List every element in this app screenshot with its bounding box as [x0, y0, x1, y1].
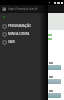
button[interactable] [0, 90, 61, 98]
staticText: PROGRAMAÇÃO [8, 24, 31, 28]
button[interactable]: SAIR [0, 38, 48, 46]
staticText: MINHA CONTA [8, 32, 30, 36]
button[interactable]: PROGRAMAÇÃO [0, 22, 48, 30]
button[interactable]: MINHA CONTA [0, 30, 48, 38]
button[interactable]: https://exemplo.com.br [0, 5, 48, 13]
button[interactable] [0, 62, 61, 70]
staticText: https://exemplo.com.br [8, 7, 38, 11]
button[interactable] [0, 76, 61, 84]
staticText: SAIR [8, 40, 15, 44]
